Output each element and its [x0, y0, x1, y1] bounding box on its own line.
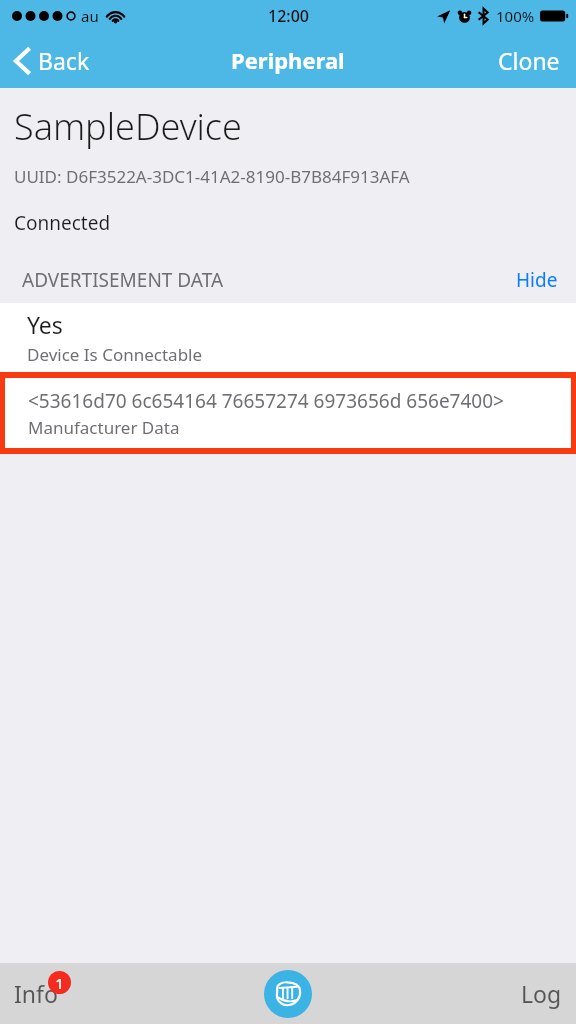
staticText: Info: [14, 978, 58, 1009]
staticText: Device Is Connectable: [27, 343, 203, 366]
button[interactable]: Info: [0, 968, 84, 1019]
button[interactable]: Hide: [498, 259, 576, 301]
button[interactable]: Log: [495, 968, 576, 1019]
staticText: ADVERTISEMENT DATA: [22, 267, 224, 293]
button[interactable]: Punch: [264, 970, 312, 1018]
staticText: Back: [38, 45, 90, 76]
staticText: UUID: D6F3522A-3DC1-41A2-8190-B7B84F913A…: [14, 165, 410, 188]
staticText: Log: [521, 978, 562, 1009]
staticText: Connected: [14, 210, 111, 236]
staticText: Manufacturer Data: [28, 416, 180, 439]
button[interactable]: Back: [0, 39, 104, 82]
staticText: Yes: [27, 309, 63, 340]
staticText: Hide: [516, 267, 558, 293]
button[interactable]: <53616d70 6c654164 76657274 6973656d 656…: [0, 372, 576, 454]
staticText: 1: [55, 973, 64, 993]
staticText: au: [81, 6, 99, 26]
button[interactable]: Clone: [482, 37, 576, 84]
staticText: <53616d70 6c654164 76657274 6973656d 656…: [28, 388, 504, 414]
staticText: Clone: [498, 45, 560, 76]
button[interactable]: Yes: [0, 303, 576, 372]
staticText: Peripheral: [231, 45, 345, 75]
staticText: SampleDevice: [14, 102, 242, 151]
staticText: 100%: [496, 6, 535, 26]
staticText: 12:00: [268, 5, 309, 27]
